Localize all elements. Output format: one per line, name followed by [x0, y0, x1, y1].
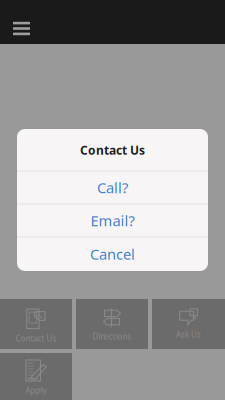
- staticText: Call?: [97, 178, 128, 197]
- button[interactable]: Email?: [17, 204, 208, 236]
- button[interactable]: Ask Us: [152, 299, 225, 349]
- button[interactable]: Cancel: [17, 237, 208, 270]
- button[interactable]: Call?: [17, 171, 208, 203]
- button[interactable]: Directions: [76, 299, 148, 349]
- staticText: Contact Us: [15, 333, 56, 344]
- button[interactable]: Contact Us: [0, 299, 72, 349]
- staticText: Ask Us: [176, 329, 201, 340]
- staticText: Apply: [25, 385, 46, 396]
- staticText: Cancel: [90, 244, 135, 264]
- button[interactable]: Menu: [0, 4, 42, 40]
- staticText: Contact Us: [80, 142, 145, 158]
- staticText: Directions: [92, 331, 131, 342]
- staticText: Email?: [90, 211, 134, 230]
- button[interactable]: Apply: [0, 353, 72, 400]
